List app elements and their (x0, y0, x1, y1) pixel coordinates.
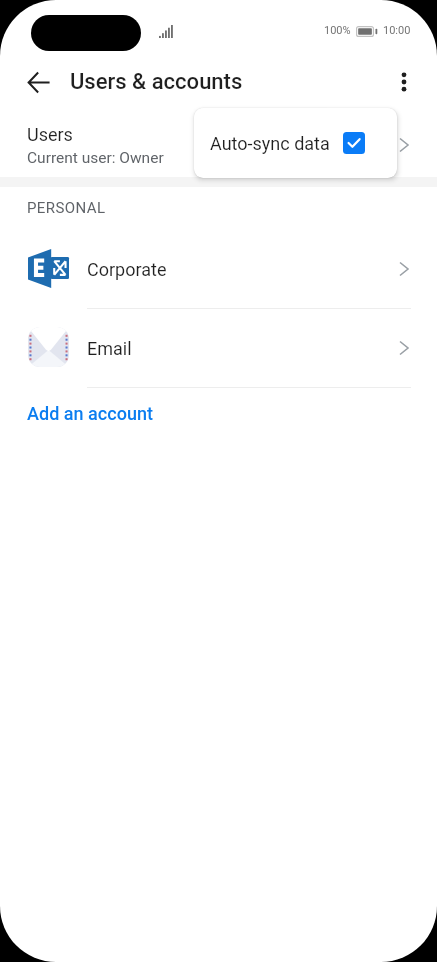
button[interactable]: Users (0, 106, 437, 177)
staticText: Users (27, 124, 73, 145)
button[interactable]: Add an account (0, 389, 437, 437)
button[interactable]: Corporate (0, 230, 437, 308)
staticText: 100% (324, 24, 351, 37)
button[interactable]: Back (14, 58, 62, 106)
button[interactable]: Auto-sync data (194, 108, 397, 178)
staticText: Corporate (87, 259, 167, 280)
staticText: Users & accounts (70, 69, 243, 95)
staticText: Current user: Owner (27, 149, 164, 167)
staticText: PERSONAL (27, 199, 106, 217)
button[interactable]: Email (0, 309, 437, 387)
staticText: Email (87, 338, 132, 359)
staticText: Auto-sync data (210, 133, 330, 154)
button[interactable]: More options (380, 58, 428, 106)
staticText: 10:00 (383, 24, 411, 37)
staticText: Add an account (27, 403, 153, 424)
